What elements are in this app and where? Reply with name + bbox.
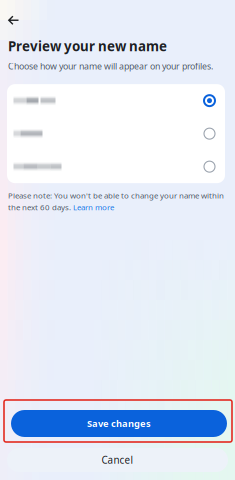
staticText: the next 60 days. [8, 202, 73, 213]
staticText: Save changes [87, 417, 151, 430]
button[interactable] [7, 150, 225, 183]
button[interactable]: Back [0, 0, 31, 34]
button[interactable] [7, 84, 225, 117]
staticText: Choose how your name will appear on your… [8, 60, 213, 72]
button[interactable] [7, 117, 225, 150]
staticText: Please note: You won't be able to change… [8, 190, 224, 201]
button[interactable]: Learn more [73, 202, 114, 213]
staticText: Learn more [73, 202, 114, 213]
staticText: Cancel [101, 453, 133, 467]
staticText: Preview your new name [8, 37, 167, 55]
button[interactable]: Save changes [11, 410, 227, 437]
button[interactable]: Cancel [7, 448, 228, 472]
